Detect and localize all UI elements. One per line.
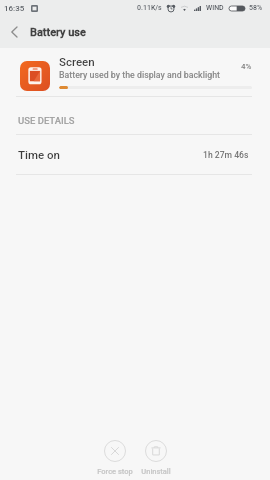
button[interactable]: Uninstall xyxy=(135,440,176,476)
staticText: USE DETAILS xyxy=(18,115,75,126)
staticText: Force stop xyxy=(97,467,133,476)
staticText: 0.11K/s xyxy=(137,4,162,12)
button[interactable]: Force stop xyxy=(94,440,135,476)
staticText: 4% xyxy=(241,62,252,71)
staticText: 58% xyxy=(249,4,263,12)
staticText: WIND xyxy=(206,4,224,12)
button[interactable]: Back xyxy=(0,16,30,48)
staticText: Battery used by the display and backligh… xyxy=(59,70,220,80)
staticText: Screen xyxy=(59,55,95,68)
staticText: 16:35 xyxy=(4,4,25,13)
button[interactable]: Screen xyxy=(0,48,270,96)
staticText: Battery use xyxy=(30,26,86,39)
staticText: 1h 27m 46s xyxy=(203,150,249,160)
staticText: Time on xyxy=(18,148,60,161)
button[interactable]: Time on xyxy=(0,135,270,174)
staticText: Uninstall xyxy=(141,467,171,476)
